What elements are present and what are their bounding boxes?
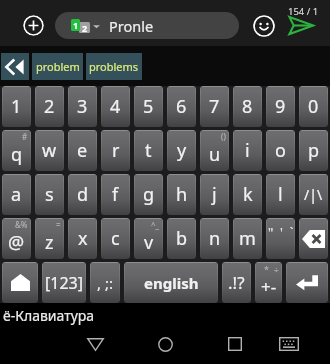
button[interactable]: y (167, 130, 196, 171)
button[interactable]: o (266, 130, 295, 171)
button[interactable]: problems (86, 53, 142, 80)
button[interactable]: g (134, 174, 163, 215)
button[interactable]: t (134, 130, 163, 171)
button[interactable]: 2 (55, 12, 239, 39)
button[interactable]: 6 (167, 86, 196, 127)
other: Enter (286, 262, 328, 303)
button[interactable]: " ' ` (266, 218, 295, 259)
button[interactable]: c (101, 218, 130, 259)
button[interactable]: s (35, 174, 64, 215)
button[interactable]: l (266, 174, 295, 215)
button[interactable]: () (200, 130, 229, 171)
button[interactable]: b (167, 218, 196, 259)
staticText: 3 (77, 94, 88, 119)
button[interactable]: Switch keyboard (267, 326, 311, 362)
staticText: english (144, 273, 199, 293)
button[interactable]: h (167, 174, 196, 215)
staticText: b (176, 226, 188, 251)
staticText: v (144, 230, 154, 255)
staticText: @ (8, 230, 25, 255)
staticText: ё-Клавиатура (3, 306, 95, 325)
staticText: 8 (242, 94, 253, 119)
staticText: p (308, 138, 320, 163)
button[interactable]: /|\ (299, 174, 328, 215)
staticText: 1 (11, 94, 22, 119)
button[interactable]: w (35, 130, 64, 171)
button[interactable]: e (68, 130, 97, 171)
staticText: w (42, 138, 57, 163)
staticText: x (78, 226, 88, 251)
button[interactable]: 7 (200, 86, 229, 127)
button[interactable]: i (233, 130, 262, 171)
staticText: i (245, 138, 250, 163)
staticText: &% (15, 219, 28, 230)
staticText: Pronle (109, 16, 154, 36)
button[interactable]: Emoji (253, 15, 275, 37)
button[interactable]: Back (73, 326, 117, 362)
staticText: o (275, 138, 286, 163)
button[interactable]: d (68, 174, 97, 215)
other: Backspace (299, 218, 328, 259)
staticText: 5 (143, 94, 154, 119)
button[interactable]: p (299, 130, 328, 171)
button[interactable]: m (233, 218, 262, 259)
button[interactable]: english (124, 262, 218, 303)
button[interactable]: Home (2, 262, 38, 303)
staticText: r (112, 138, 120, 163)
button[interactable]: Backspace (299, 218, 328, 259)
staticText: g (143, 182, 155, 207)
staticText: /|\ (304, 185, 323, 204)
staticText: 6 (176, 94, 187, 119)
staticText: y (177, 138, 187, 163)
button[interactable]: problem (32, 53, 83, 80)
staticText: .!? (228, 271, 245, 294)
staticText: " ' ` (268, 223, 294, 241)
button[interactable]: = (35, 218, 64, 259)
staticText: 154 / 1 (288, 5, 319, 18)
staticText: e (77, 138, 88, 163)
button[interactable]: 5 (134, 86, 163, 127)
staticText: ^_ (151, 219, 160, 230)
staticText: f (112, 182, 119, 207)
staticText: 4 (110, 94, 121, 119)
button[interactable]: .!? (222, 262, 251, 303)
staticText: q (11, 142, 23, 167)
button[interactable]: k (233, 174, 262, 215)
staticText: t (145, 138, 152, 163)
button[interactable]: f (101, 174, 130, 215)
staticText: s (45, 182, 54, 207)
other: Home (2, 262, 38, 303)
button[interactable]: n (200, 218, 229, 259)
button[interactable]: Enter (286, 262, 328, 303)
button[interactable]: ^_ (134, 218, 163, 259)
staticText: c (111, 226, 120, 251)
button[interactable]: * ÷ (255, 262, 282, 303)
button[interactable]: x (68, 218, 97, 259)
staticText: 2 (82, 22, 88, 33)
staticText: 7 (209, 94, 220, 119)
button[interactable]: , ;: (90, 262, 120, 303)
button[interactable]: r (101, 130, 130, 171)
button[interactable]: 4 (101, 86, 130, 127)
staticText: m (239, 226, 256, 251)
button[interactable]: 3 (68, 86, 97, 127)
button[interactable]: Recent apps (213, 326, 257, 362)
button[interactable]: a (2, 174, 31, 215)
button[interactable]: Attach (23, 15, 44, 36)
button[interactable]: 0 (299, 86, 328, 127)
staticText: z (45, 230, 54, 255)
button[interactable]: &% (2, 218, 31, 259)
button[interactable]: 9 (266, 86, 295, 127)
staticText: u (209, 142, 221, 167)
button[interactable]: 2 (35, 86, 64, 127)
button[interactable]: Send (287, 15, 314, 36)
button[interactable]: Home (143, 326, 187, 362)
button[interactable]: # (2, 130, 31, 171)
staticText: 1 (73, 19, 79, 31)
staticText: () (221, 131, 226, 142)
button[interactable]: More suggestions (1, 53, 29, 80)
button[interactable]: 8 (233, 86, 262, 127)
button[interactable]: j (200, 174, 229, 215)
button[interactable]: [123] (42, 262, 86, 303)
button[interactable]: 1 (2, 86, 31, 127)
